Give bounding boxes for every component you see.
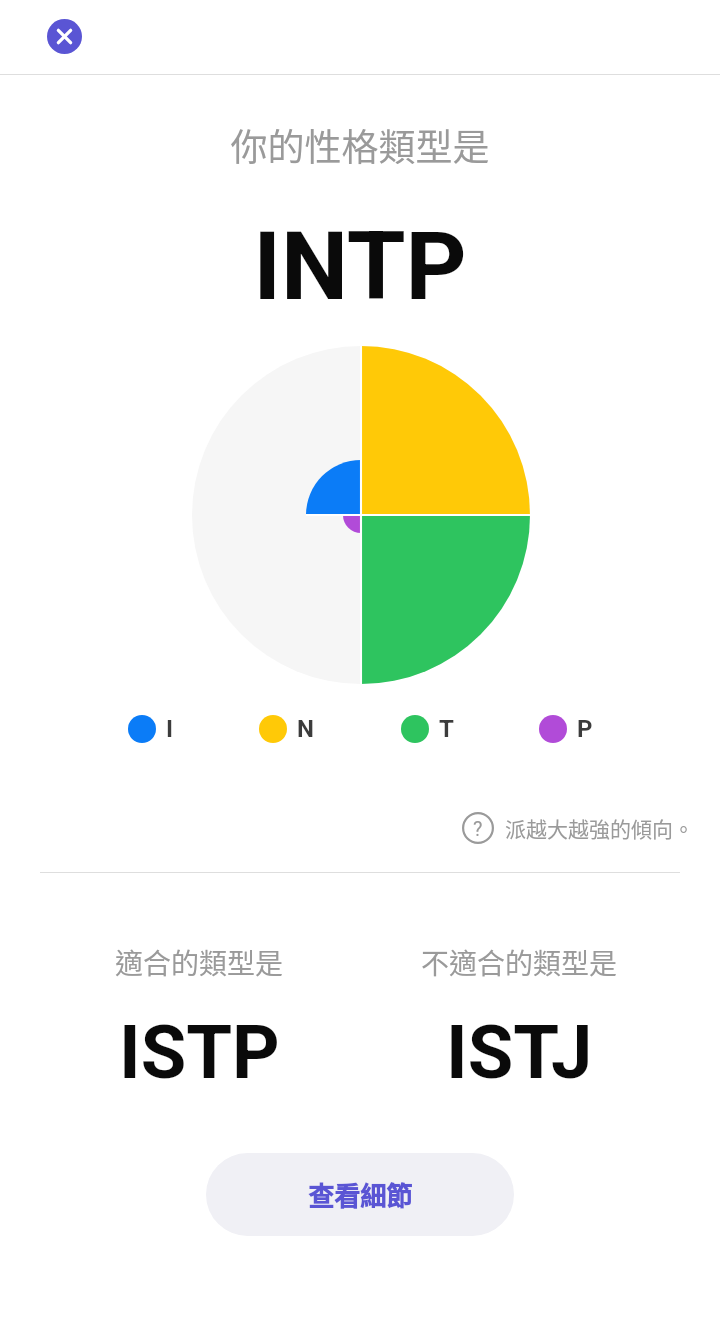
button[interactable]: Close — [47, 19, 82, 54]
staticText: P — [577, 715, 593, 743]
staticText: 查看細節 — [308, 1176, 413, 1214]
staticText: INTP — [0, 211, 720, 322]
button[interactable]: I — [128, 715, 174, 743]
button[interactable]: N — [259, 715, 314, 743]
button[interactable]: Help — [462, 812, 494, 844]
button[interactable]: 查看細節 — [206, 1153, 514, 1236]
staticText: N — [297, 715, 314, 743]
button[interactable]: P — [539, 715, 593, 743]
staticText: ISTJ — [446, 1009, 593, 1096]
staticText: 派越大越強的傾向。 — [505, 813, 694, 843]
staticText: ? — [473, 817, 483, 840]
staticText: 適合的類型是 — [115, 942, 284, 983]
staticText: I — [166, 715, 174, 743]
staticText: 你的性格類型是 — [0, 118, 720, 172]
staticText: 不適合的類型是 — [421, 942, 618, 983]
staticText: ISTP — [119, 1009, 280, 1096]
staticText: T — [439, 715, 454, 743]
button[interactable]: T — [401, 715, 454, 743]
